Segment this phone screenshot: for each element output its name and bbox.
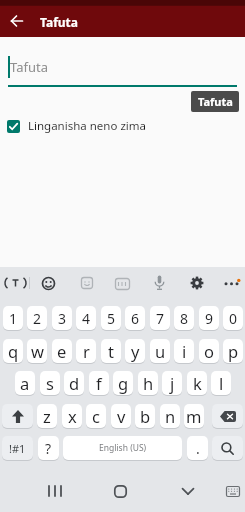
staticText: o bbox=[204, 340, 214, 362]
button[interactable]: i bbox=[174, 339, 194, 363]
button[interactable] bbox=[41, 276, 55, 290]
staticText: h bbox=[143, 372, 154, 394]
button[interactable] bbox=[153, 274, 166, 291]
staticText: 8 bbox=[180, 309, 189, 328]
staticText: Tafuta bbox=[198, 94, 233, 109]
button[interactable]: 8 bbox=[174, 306, 194, 330]
button[interactable] bbox=[224, 483, 242, 499]
staticText: 7 bbox=[156, 309, 165, 328]
button[interactable]: d bbox=[64, 371, 84, 395]
button[interactable]: 5 bbox=[101, 306, 121, 330]
button[interactable] bbox=[2, 404, 33, 428]
button[interactable]: y bbox=[125, 339, 145, 363]
staticText: s bbox=[46, 372, 54, 394]
button[interactable]: k bbox=[187, 371, 207, 395]
button[interactable]: m bbox=[184, 404, 204, 428]
button[interactable]: n bbox=[160, 404, 180, 428]
button[interactable]: c bbox=[86, 404, 106, 428]
button[interactable]: 9 bbox=[199, 306, 219, 330]
button[interactable] bbox=[212, 436, 243, 460]
button[interactable]: u bbox=[150, 339, 170, 363]
staticText: 3 bbox=[58, 309, 67, 328]
staticText: . bbox=[196, 439, 200, 458]
button[interactable]: l bbox=[211, 371, 231, 395]
staticText: w bbox=[31, 340, 44, 362]
button[interactable] bbox=[7, 275, 23, 291]
button[interactable] bbox=[44, 482, 66, 500]
staticText: p bbox=[228, 340, 239, 362]
staticText: 5 bbox=[107, 309, 116, 328]
button[interactable]: 3 bbox=[52, 306, 72, 330]
staticText: i bbox=[182, 340, 187, 362]
button[interactable] bbox=[189, 275, 204, 290]
staticText: j bbox=[170, 372, 175, 394]
button[interactable]: b bbox=[135, 404, 155, 428]
button[interactable] bbox=[80, 276, 94, 290]
button[interactable]: q bbox=[3, 339, 23, 363]
staticText: r bbox=[83, 340, 90, 362]
button[interactable]: x bbox=[62, 404, 82, 428]
staticText: y bbox=[131, 340, 140, 362]
staticText: Tafuta bbox=[40, 14, 78, 30]
staticText: v bbox=[117, 405, 126, 427]
button[interactable] bbox=[8, 12, 26, 30]
staticText: 4 bbox=[82, 309, 91, 328]
button[interactable]: p bbox=[223, 339, 243, 363]
staticText: m bbox=[186, 405, 202, 427]
staticText: x bbox=[68, 405, 77, 427]
staticText: b bbox=[140, 405, 151, 427]
staticText: 6 bbox=[131, 309, 140, 328]
button[interactable] bbox=[223, 279, 240, 287]
button[interactable]: r bbox=[76, 339, 96, 363]
staticText: Linganisha neno zima bbox=[28, 118, 146, 134]
staticText: g bbox=[118, 372, 129, 394]
staticText: a bbox=[20, 372, 30, 394]
button[interactable] bbox=[114, 277, 130, 290]
button[interactable]: z bbox=[37, 404, 57, 428]
button[interactable]: 1 bbox=[3, 306, 23, 330]
button[interactable]: English (US) bbox=[63, 436, 182, 460]
staticText: English (US) bbox=[99, 442, 147, 454]
button[interactable] bbox=[110, 481, 131, 501]
staticText: c bbox=[92, 405, 100, 427]
staticText: l bbox=[219, 372, 224, 394]
button[interactable] bbox=[177, 482, 198, 500]
staticText: q bbox=[8, 340, 19, 362]
button[interactable]: 6 bbox=[125, 306, 145, 330]
button[interactable]: 4 bbox=[76, 306, 96, 330]
staticText: k bbox=[193, 372, 202, 394]
staticText: e bbox=[57, 340, 67, 362]
staticText: Tafuta bbox=[10, 58, 48, 76]
button[interactable] bbox=[212, 404, 243, 428]
button[interactable]: f bbox=[89, 371, 109, 395]
button[interactable]: h bbox=[138, 371, 158, 395]
staticText: !#1 bbox=[9, 441, 26, 456]
button[interactable]: 7 bbox=[150, 306, 170, 330]
staticText: z bbox=[43, 405, 51, 427]
button[interactable]: 0 bbox=[223, 306, 243, 330]
button[interactable]: t bbox=[101, 339, 121, 363]
staticText: d bbox=[69, 372, 80, 394]
staticText: t bbox=[108, 340, 114, 362]
button[interactable]: o bbox=[199, 339, 219, 363]
staticText: ? bbox=[45, 439, 52, 458]
staticText: 0 bbox=[229, 309, 238, 328]
button[interactable]: 2 bbox=[27, 306, 47, 330]
staticText: 1 bbox=[9, 309, 18, 328]
button[interactable]: !#1 bbox=[2, 436, 33, 460]
button[interactable]: j bbox=[162, 371, 182, 395]
button[interactable]: v bbox=[111, 404, 131, 428]
button[interactable]: g bbox=[113, 371, 133, 395]
button[interactable]: w bbox=[27, 339, 47, 363]
button[interactable]: e bbox=[52, 339, 72, 363]
staticText: u bbox=[155, 340, 166, 362]
staticText: 2 bbox=[33, 309, 42, 328]
staticText: n bbox=[165, 405, 176, 427]
button[interactable]: Linganisha neno zima bbox=[7, 118, 146, 134]
button[interactable]: a bbox=[15, 371, 35, 395]
staticText: f bbox=[96, 372, 102, 394]
button[interactable]: s bbox=[40, 371, 60, 395]
button[interactable]: . bbox=[187, 436, 208, 460]
staticText: 9 bbox=[205, 309, 214, 328]
button[interactable]: ? bbox=[38, 436, 59, 460]
